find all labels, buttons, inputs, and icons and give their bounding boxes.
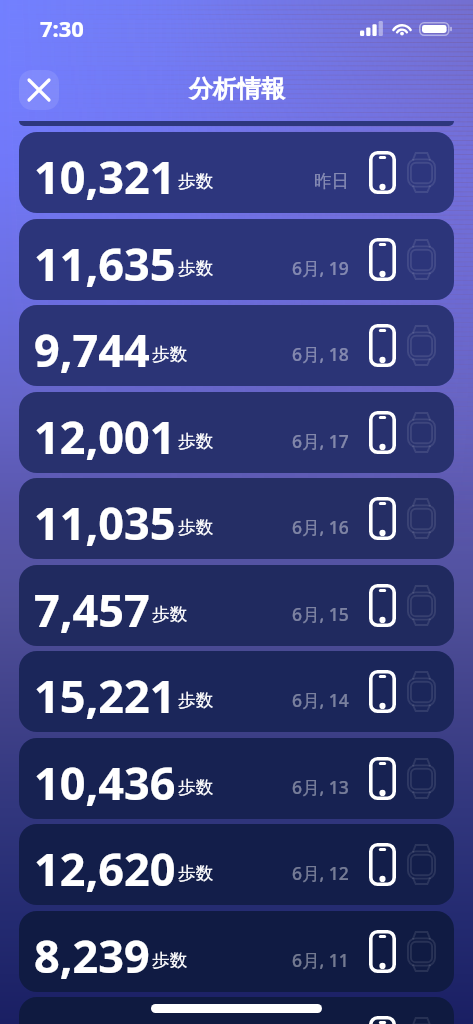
staticText: 歩数 [178, 776, 213, 798]
staticText: 12,620 [34, 838, 176, 899]
button[interactable]: 7,457 [19, 565, 454, 646]
staticText: 歩数 [178, 516, 213, 538]
staticText: 10,321 [34, 146, 176, 207]
button[interactable]: 12,620 [19, 824, 454, 905]
button[interactable]: 10,321 [19, 132, 454, 213]
button[interactable]: 9,102 [19, 997, 454, 1024]
staticText: 歩数 [152, 343, 187, 365]
staticText: 11,635 [34, 233, 176, 294]
staticText: 8,239 [34, 925, 150, 986]
staticText: 歩数 [178, 862, 213, 884]
staticText: 6月, 16 [292, 515, 349, 539]
staticText: 歩数 [178, 170, 213, 192]
button[interactable]: 11,035 [19, 478, 454, 559]
staticText: 7,457 [34, 579, 150, 640]
staticText: 歩数 [152, 603, 187, 625]
staticText: 6月, 15 [292, 602, 349, 626]
staticText: 歩数 [178, 689, 213, 711]
staticText: 6月, 13 [292, 775, 349, 799]
staticText: 昨日 [314, 170, 349, 192]
staticText: 7:30 [40, 13, 84, 43]
staticText: 6月, 12 [292, 861, 349, 885]
button[interactable]: 15,221 [19, 651, 454, 732]
button[interactable]: 9,744 [19, 305, 454, 386]
button[interactable]: 10,436 [19, 738, 454, 819]
staticText: 6月, 17 [292, 429, 349, 453]
staticText: 歩数 [152, 949, 187, 971]
staticText: 6月, 11 [292, 948, 349, 972]
staticText: 15,221 [34, 665, 176, 726]
staticText: 11,035 [34, 492, 176, 553]
staticText: 9,744 [34, 319, 150, 380]
staticText: 歩数 [178, 430, 213, 452]
staticText: 6月, 18 [292, 342, 349, 366]
staticText: 10,436 [34, 752, 176, 813]
staticText: 6月, 19 [292, 256, 349, 280]
button[interactable]: 11,635 [19, 219, 454, 300]
staticText: 歩数 [178, 257, 213, 279]
staticText: 6月, 14 [292, 688, 349, 712]
staticText: 分析情報 [189, 74, 285, 104]
button[interactable]: 12,001 [19, 392, 454, 473]
button[interactable]: 閉じる [19, 70, 59, 110]
button[interactable]: 8,239 [19, 911, 454, 992]
staticText: 12,001 [34, 406, 176, 467]
